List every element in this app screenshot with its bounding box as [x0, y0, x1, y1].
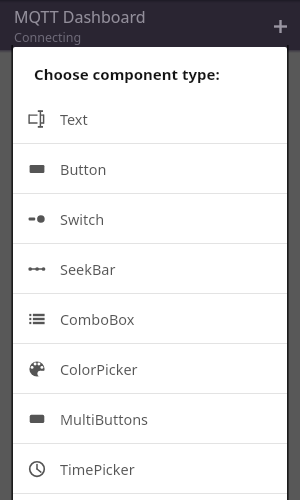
staticText: SeekBar [60, 260, 116, 280]
staticText: ComboBox [60, 310, 135, 330]
button[interactable]: Add [260, 6, 300, 46]
staticText: Text [60, 110, 88, 130]
staticText: Choose component type: [34, 64, 220, 84]
button[interactable]: ColorPicker [13, 344, 287, 393]
button[interactable]: ComboBox [13, 294, 287, 343]
staticText: MultiButtons [60, 410, 148, 430]
staticText: Switch [60, 210, 105, 230]
button[interactable]: Switch [13, 194, 287, 243]
staticText: ColorPicker [60, 360, 138, 380]
button[interactable]: Text [13, 94, 287, 143]
button[interactable]: TimePicker [13, 444, 287, 493]
button[interactable]: SeekBar [13, 244, 287, 293]
staticText: TimePicker [60, 460, 135, 480]
staticText: Connecting [14, 29, 82, 46]
button[interactable]: MultiButtons [13, 394, 287, 443]
staticText: Button [60, 160, 107, 180]
button[interactable]: Button [13, 144, 287, 193]
staticText: MQTT Dashboard [14, 6, 146, 28]
